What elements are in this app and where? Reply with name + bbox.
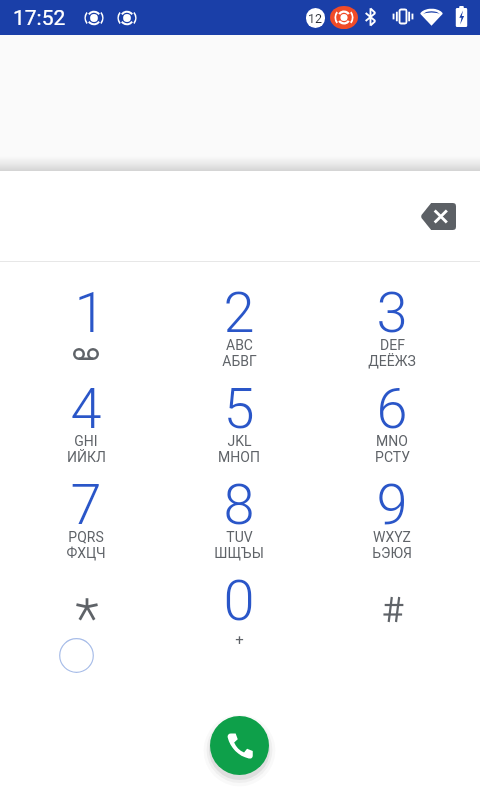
staticText: 7 [70,472,102,534]
button[interactable]: Dial 5 [163,372,315,468]
button[interactable]: Dial 1 [10,276,162,372]
staticText: + [235,631,244,649]
button[interactable]: Dial 0 [163,564,315,660]
staticText: ШЩЪЫ [214,545,264,561]
staticText: DEF [380,337,405,353]
button[interactable]: Call [210,716,269,775]
staticText: 9 [376,472,408,534]
staticText: JKL [227,433,252,449]
staticText: ABC [226,337,253,353]
button[interactable]: Dial # [316,564,468,660]
staticText: MNO [376,433,408,449]
staticText: РСТУ [375,449,410,465]
button[interactable]: Dial 7 [10,468,162,564]
button[interactable]: Dial 6 [316,372,468,468]
staticText: 3 [376,280,408,342]
staticText: TUV [226,529,253,545]
staticText: 1 [74,280,106,342]
button[interactable]: Dial 8 [163,468,315,564]
button[interactable]: Dial 4 [10,372,162,468]
staticText: ЬЭЮЯ [372,545,412,561]
staticText: 17:52 [13,6,66,31]
button[interactable]: Dial * [10,564,162,660]
staticText: GHI [74,433,98,449]
staticText: 2 [223,280,255,342]
staticText: АБВГ [222,353,257,369]
staticText: WXYZ [373,529,411,545]
staticText: ДЕЁЖЗ [368,353,416,369]
staticText: МНОП [218,449,260,465]
staticText: ИЙКЛ [67,449,106,465]
button[interactable]: Dial 3 [316,276,468,372]
staticText: 5 [223,376,255,438]
staticText: 4 [70,376,102,438]
staticText: 8 [223,472,255,534]
staticText: ФХЦЧ [66,545,106,561]
button[interactable]: Backspace [414,194,462,238]
staticText: 12 [308,11,323,26]
staticText: 0 [223,568,255,630]
staticText: 6 [376,376,408,438]
staticText: PQRS [68,529,104,545]
button[interactable]: Dial 9 [316,468,468,564]
button[interactable]: Dial 2 [163,276,315,372]
